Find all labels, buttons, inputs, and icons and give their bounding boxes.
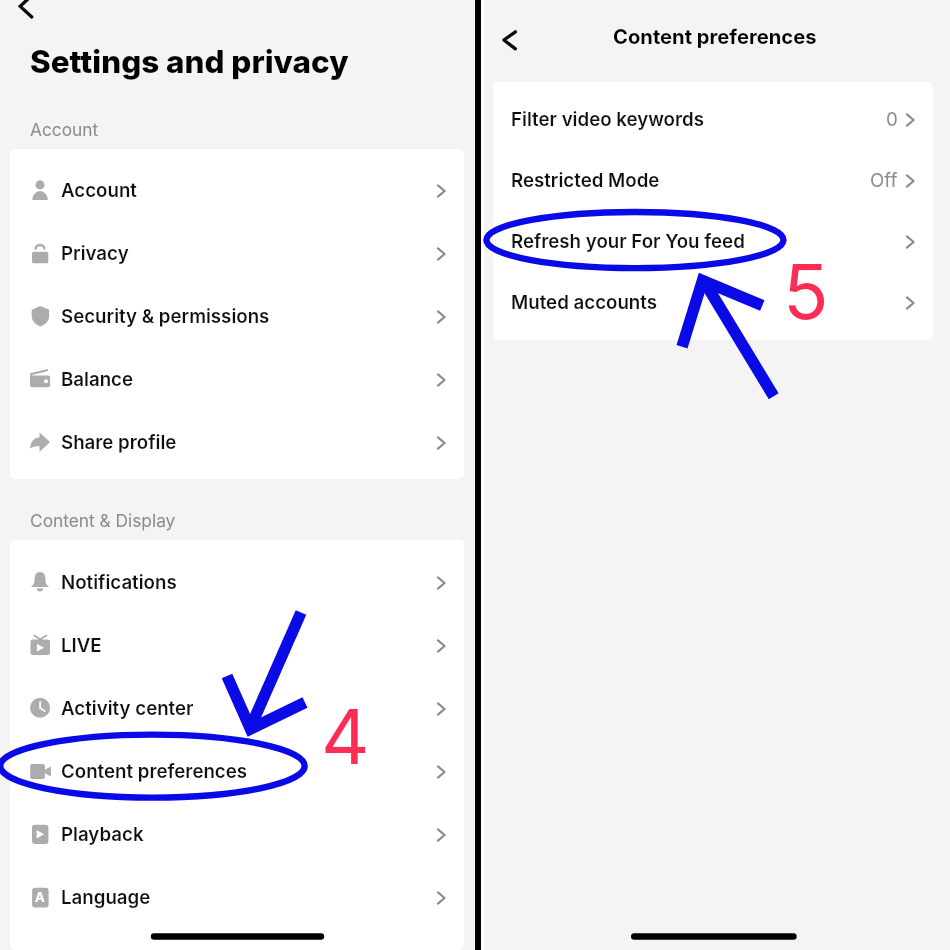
- button[interactable]: Activity center: [10, 677, 464, 740]
- staticText: Muted accounts: [511, 291, 657, 314]
- staticText: Playback: [61, 823, 144, 846]
- staticText: A: [35, 889, 45, 905]
- button[interactable]: Privacy: [10, 222, 464, 285]
- button[interactable]: Security & permissions: [10, 285, 464, 348]
- button[interactable]: Notifications: [10, 551, 464, 614]
- button[interactable]: Account: [10, 159, 464, 222]
- staticText: 0: [886, 108, 898, 131]
- staticText: Refresh your For You feed: [511, 230, 745, 253]
- staticText: 5: [783, 246, 829, 337]
- staticText: Content preferences: [613, 24, 817, 48]
- staticText: Account: [30, 119, 99, 140]
- staticText: Settings and privacy: [30, 43, 349, 81]
- button[interactable]: LIVE: [10, 614, 464, 677]
- button[interactable]: A: [10, 866, 464, 929]
- staticText: Privacy: [61, 242, 129, 265]
- button[interactable]: Refresh your For You feed: [493, 211, 933, 272]
- button[interactable]: Back: [493, 23, 527, 57]
- staticText: Notifications: [61, 571, 177, 594]
- button[interactable]: Playback: [10, 803, 464, 866]
- staticText: Filter video keywords: [511, 108, 704, 131]
- button[interactable]: Content preferences: [10, 740, 464, 803]
- button[interactable]: Restricted Mode: [493, 150, 933, 211]
- staticText: Language: [61, 886, 151, 909]
- staticText: Off: [870, 169, 898, 192]
- staticText: Restricted Mode: [511, 169, 660, 192]
- staticText: 4: [321, 691, 370, 782]
- staticText: Balance: [61, 368, 134, 391]
- button[interactable]: Filter video keywords: [493, 89, 933, 150]
- staticText: Security & permissions: [61, 305, 270, 328]
- staticText: Share profile: [61, 431, 177, 454]
- button[interactable]: Muted accounts: [493, 272, 933, 333]
- staticText: Content preferences: [61, 760, 248, 783]
- button[interactable]: Back: [8, 0, 44, 22]
- staticText: LIVE: [61, 634, 102, 657]
- button[interactable]: Balance: [10, 348, 464, 411]
- staticText: Account: [61, 179, 137, 202]
- staticText: Content & Display: [30, 510, 176, 531]
- staticText: Activity center: [61, 697, 194, 720]
- button[interactable]: Share profile: [10, 411, 464, 474]
